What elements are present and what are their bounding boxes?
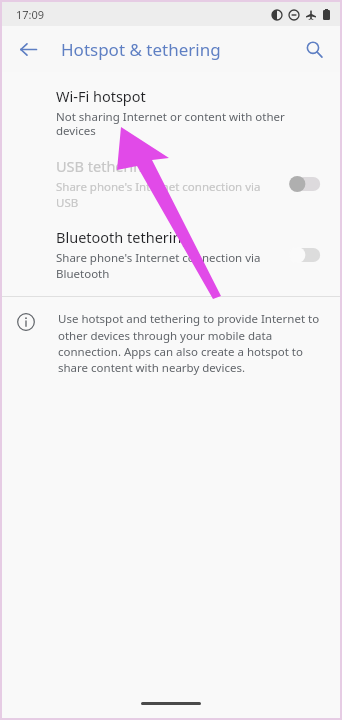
- staticText: Hotspot & tethering: [61, 38, 221, 61]
- staticText: Not sharing Internet or content with oth…: [56, 109, 320, 138]
- staticText: Bluetooth tethering: [56, 227, 191, 247]
- staticText: USB tethering: [56, 156, 152, 176]
- button[interactable]: Toggle: [286, 170, 324, 198]
- button[interactable]: Wi-Fi hotspot: [2, 84, 340, 140]
- staticText: Share phone's Internet connection via: [56, 250, 261, 266]
- staticText: USB: [56, 195, 79, 211]
- button[interactable]: Search: [294, 29, 334, 69]
- staticText: Use hotspot and tethering to provide Int…: [58, 311, 320, 375]
- staticText: Share phone's Internet connection via: [56, 179, 261, 195]
- staticText: 17:09: [16, 7, 45, 22]
- button[interactable]: Toggle: [286, 241, 324, 269]
- button[interactable]: Bluetooth tethering: [2, 227, 340, 282]
- button[interactable]: USB tethering: [2, 156, 340, 211]
- staticText: Bluetooth: [56, 266, 110, 282]
- button[interactable]: Back: [8, 29, 48, 69]
- staticText: Wi-Fi hotspot: [56, 86, 146, 106]
